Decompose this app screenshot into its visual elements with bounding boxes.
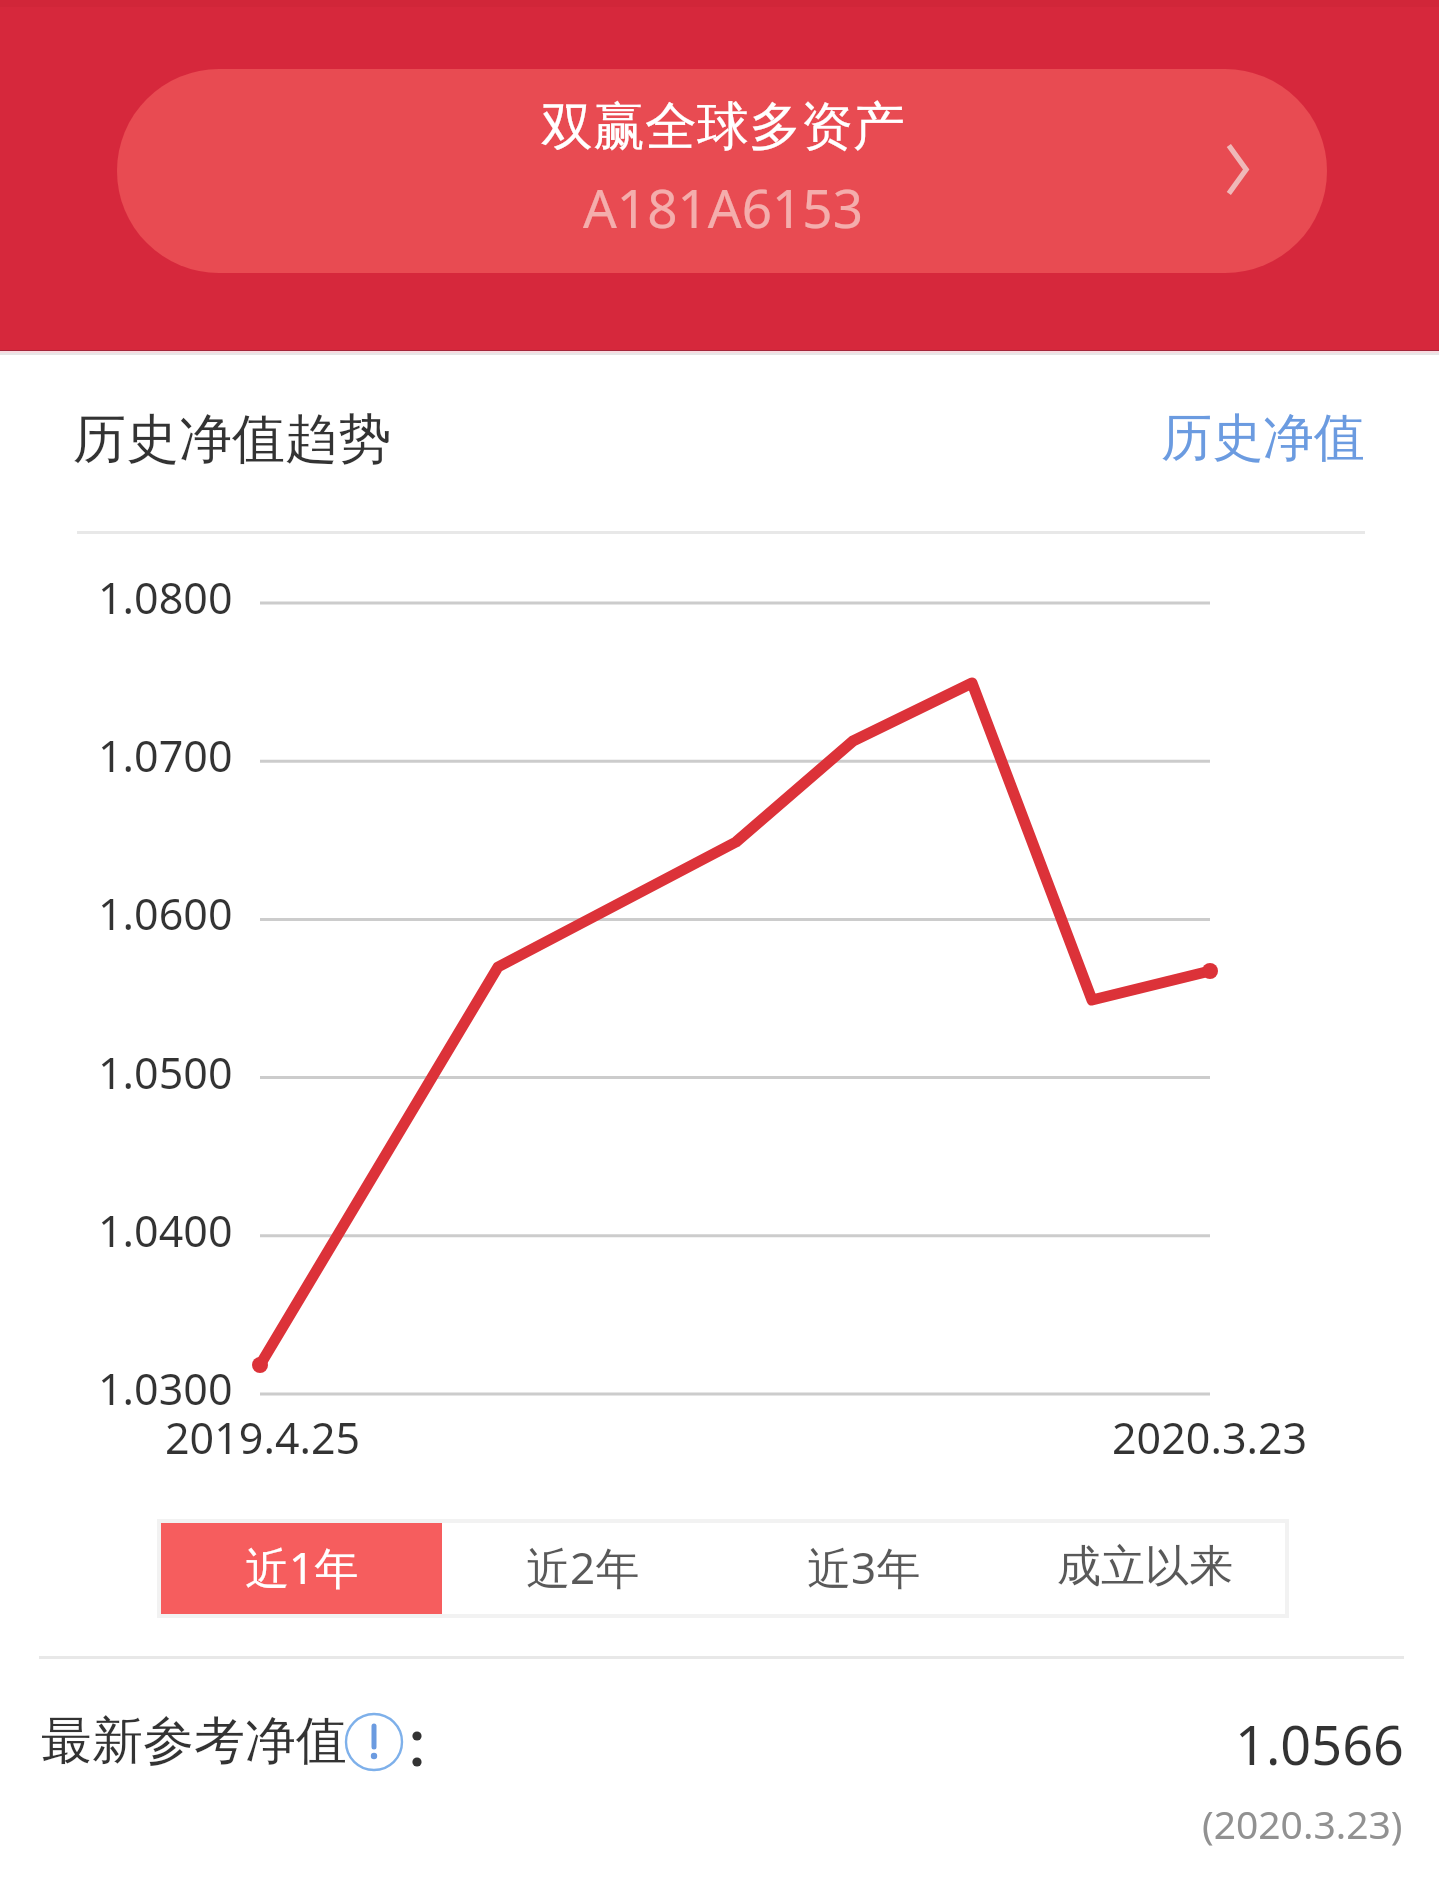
staticText: 1.0300 <box>98 1359 233 1418</box>
staticText: 1.0400 <box>98 1201 233 1260</box>
staticText: 1.0700 <box>98 726 233 785</box>
staticText: 历史净值 <box>1161 406 1365 470</box>
staticText: 近2年 <box>526 1537 640 1597</box>
staticText: 近1年 <box>245 1537 359 1597</box>
button[interactable]: 历史净值 <box>1060 406 1365 470</box>
button[interactable]: 成立以来 <box>1004 1523 1285 1614</box>
staticText: 成立以来 <box>1057 1539 1233 1594</box>
staticText: 历史净值趋势 <box>73 406 391 473</box>
staticText: 2019.4.25 <box>165 1408 361 1467</box>
staticText: A181A6153 <box>583 171 863 243</box>
button[interactable]: 近1年 <box>161 1523 442 1614</box>
staticText: 1.0566 <box>1235 1707 1404 1781</box>
staticText: (2020.3.23) <box>1202 1797 1403 1850</box>
staticText: 1.0600 <box>98 884 233 943</box>
staticText: 2020.3.23 <box>1112 1408 1308 1467</box>
staticText: 1.0500 <box>98 1043 233 1102</box>
staticText: 双赢全球多资产 <box>541 94 905 160</box>
button[interactable]: 双赢全球多资产 <box>117 69 1327 273</box>
button[interactable]: 近3年 <box>723 1523 1004 1614</box>
button[interactable]: 查看基金详情 <box>1212 144 1263 195</box>
button[interactable]: 近2年 <box>442 1523 723 1614</box>
staticText: 1.0800 <box>98 568 233 627</box>
staticText: 最新参考净值 <box>41 1709 347 1773</box>
button[interactable]: 净值说明 <box>345 1713 403 1771</box>
staticText: 近3年 <box>807 1537 921 1597</box>
